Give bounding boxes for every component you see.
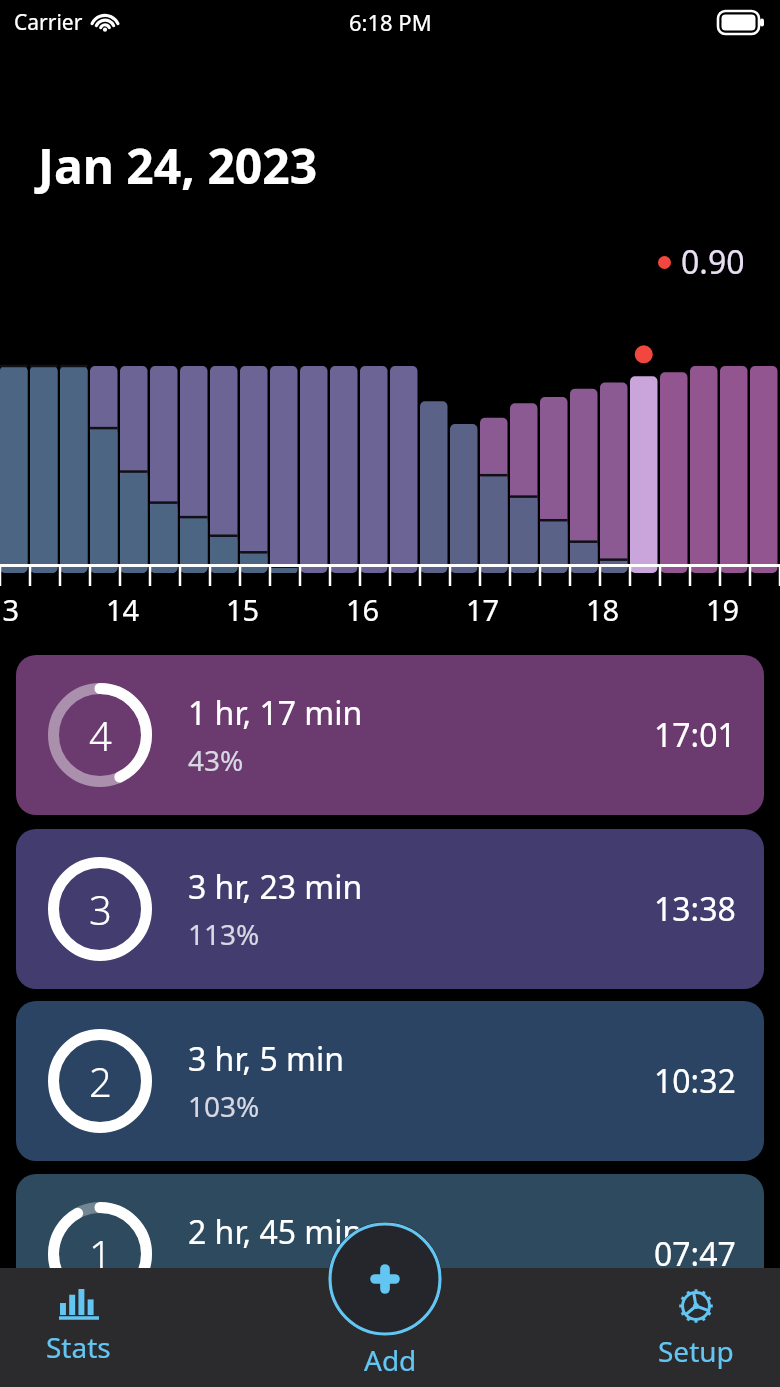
button[interactable]: Stats — [36, 1279, 121, 1376]
staticText: 15 — [226, 590, 260, 629]
staticText: Jan 24, 2023 — [38, 133, 318, 198]
button[interactable]: 2 — [16, 1001, 764, 1161]
staticText: 43% — [188, 741, 244, 779]
staticText: 2 — [89, 1054, 112, 1108]
staticText: 1 hr, 17 min — [188, 691, 363, 735]
button[interactable]: Add — [328, 1222, 442, 1336]
staticText: 3 — [89, 882, 112, 936]
staticText: 3 hr, 23 min — [188, 865, 363, 909]
staticText: 17 — [466, 590, 500, 629]
staticText: Stats — [46, 1328, 111, 1366]
staticText: 6:18 PM — [349, 7, 432, 37]
button[interactable]: 1 — [16, 1174, 764, 1334]
staticText: 18 — [586, 590, 620, 629]
staticText: 4 — [89, 708, 112, 762]
button[interactable]: Setup — [648, 1275, 744, 1380]
staticText: 2 hr, 45 min — [188, 1210, 363, 1254]
staticText: 113% — [188, 915, 260, 953]
staticText: Carrier — [14, 8, 83, 37]
staticText: 92% — [188, 1260, 244, 1298]
staticText: 07:47 — [654, 1232, 736, 1276]
button[interactable]: 3 — [16, 829, 764, 989]
staticText: 1 — [89, 1227, 112, 1281]
staticText: 3 hr, 5 min — [188, 1037, 344, 1081]
staticText: 14 — [106, 590, 140, 629]
staticText: 0.90 — [681, 240, 745, 284]
staticText: 13:38 — [654, 887, 736, 931]
staticText: 17:01 — [654, 713, 736, 757]
staticText: 16 — [346, 590, 380, 629]
button[interactable]: 4 — [16, 655, 764, 815]
staticText: 19 — [706, 590, 740, 629]
staticText: Add — [364, 1341, 417, 1379]
staticText: 13 — [0, 590, 20, 629]
staticText: 10:32 — [654, 1059, 736, 1103]
staticText: 103% — [188, 1087, 260, 1125]
staticText: Setup — [658, 1332, 734, 1370]
